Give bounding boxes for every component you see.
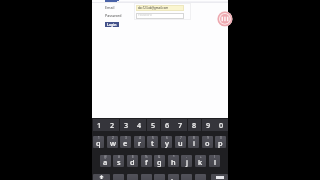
button[interactable]: Delete xyxy=(211,174,228,180)
staticText: u xyxy=(178,138,183,148)
button[interactable]: Shift xyxy=(93,174,110,180)
button[interactable]: Login xyxy=(105,22,119,27)
button[interactable]: 9 xyxy=(202,136,213,148)
staticText: # xyxy=(118,155,120,159)
button[interactable]: 1 xyxy=(93,119,106,131)
staticText: j xyxy=(186,157,188,167)
staticText: 8 xyxy=(192,120,197,130)
staticText: q xyxy=(96,138,101,148)
button[interactable]: + xyxy=(195,155,206,167)
staticText: e xyxy=(123,138,128,148)
button[interactable]: 2 xyxy=(107,136,118,148)
staticText: Email xyxy=(105,5,115,10)
button[interactable]: 8 xyxy=(188,119,201,131)
button[interactable]: 7 xyxy=(174,119,187,131)
staticText: 5 xyxy=(152,136,154,140)
button[interactable]: b xyxy=(168,174,179,180)
staticText: k xyxy=(198,157,203,167)
button[interactable]: abc123.ab@gmail.com xyxy=(136,5,184,11)
staticText: f xyxy=(145,157,148,167)
staticText: 4 xyxy=(137,120,142,130)
staticText: a xyxy=(103,157,108,167)
staticText: 0 xyxy=(219,120,224,130)
staticText: s xyxy=(117,157,121,167)
button[interactable]: 7 xyxy=(175,136,186,148)
staticText: & xyxy=(158,155,161,159)
staticText: 9 xyxy=(207,136,209,140)
staticText: Login xyxy=(107,22,117,27)
staticText: r xyxy=(138,138,142,148)
staticText: 6 xyxy=(166,136,168,140)
button[interactable]: 8 xyxy=(188,136,199,148)
staticText: 1 xyxy=(97,120,102,130)
staticText: 2 xyxy=(112,136,114,140)
button[interactable]: ( xyxy=(209,155,220,167)
staticText: 0 xyxy=(220,136,222,140)
staticText: Password xyxy=(138,13,152,17)
button[interactable]: # xyxy=(113,155,124,167)
button[interactable]: 9 xyxy=(202,119,215,131)
staticText: 6 xyxy=(165,120,170,130)
button[interactable]: 5 xyxy=(147,136,158,148)
button[interactable]: 6 xyxy=(161,136,172,148)
staticText: g xyxy=(157,157,162,167)
staticText: 8 xyxy=(193,136,195,140)
button[interactable]: 6 xyxy=(161,119,174,131)
staticText: t xyxy=(151,138,154,148)
button[interactable]: 2 xyxy=(106,119,119,131)
staticText: + xyxy=(200,155,202,159)
button[interactable]: 0 xyxy=(215,119,228,131)
staticText: ( xyxy=(214,155,215,159)
button[interactable]: Password xyxy=(136,13,184,19)
staticText: abc123.ab@gmail.com xyxy=(138,6,169,10)
button[interactable]: 0 xyxy=(215,136,226,148)
staticText: 9 xyxy=(206,120,211,130)
button[interactable]: & xyxy=(154,155,165,167)
staticText: h xyxy=(171,157,176,167)
button[interactable]: 5 xyxy=(147,119,160,131)
staticText: w xyxy=(110,138,116,148)
staticText: % xyxy=(145,155,148,159)
button[interactable]: $ xyxy=(127,155,138,167)
staticText: Password xyxy=(105,13,122,18)
button[interactable]: 3 xyxy=(120,119,133,131)
button[interactable] xyxy=(105,0,119,3)
staticText: - xyxy=(186,155,187,159)
staticText: 2 xyxy=(110,120,115,130)
staticText: 4 xyxy=(139,136,141,140)
button[interactable]: 4 xyxy=(133,119,146,131)
staticText: 7 xyxy=(180,136,182,140)
staticText: 7 xyxy=(178,120,183,130)
button[interactable]: % xyxy=(141,155,152,167)
staticText: d xyxy=(130,157,135,167)
staticText: l xyxy=(214,157,216,167)
button[interactable]: * xyxy=(168,155,179,167)
staticText: 3 xyxy=(124,120,129,130)
button[interactable]: @ xyxy=(100,155,111,167)
button[interactable]: 4 xyxy=(134,136,145,148)
staticText: o xyxy=(205,138,210,148)
button[interactable]: 3 xyxy=(120,136,131,148)
staticText: @ xyxy=(104,155,107,159)
button[interactable]: 1 xyxy=(93,136,104,148)
staticText: 1 xyxy=(98,136,100,140)
staticText: y xyxy=(165,138,169,148)
other: Site logo xyxy=(217,11,229,28)
staticText: 3 xyxy=(125,136,127,140)
button[interactable]: - xyxy=(181,155,192,167)
staticText: i xyxy=(193,138,195,148)
staticText: 5 xyxy=(151,120,156,130)
staticText: $ xyxy=(132,155,134,159)
staticText: b xyxy=(171,176,176,180)
